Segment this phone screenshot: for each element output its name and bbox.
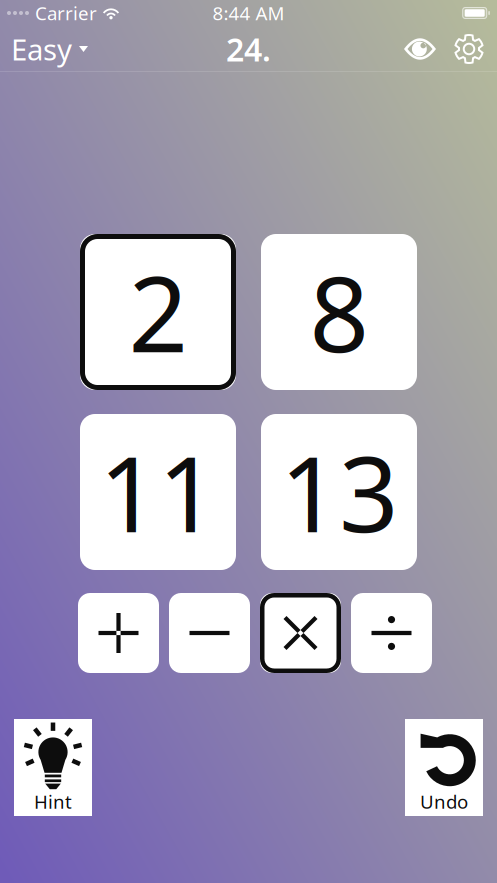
staticText: Undo: [420, 789, 468, 814]
button[interactable]: 11: [80, 414, 236, 570]
staticText: 2: [128, 243, 187, 381]
staticText: 11: [99, 423, 217, 561]
button[interactable]: Divide: [351, 593, 432, 673]
staticText: Easy: [11, 29, 72, 68]
staticText: Carrier: [35, 1, 97, 25]
button[interactable]: Minus: [169, 593, 250, 673]
staticText: 24.: [226, 28, 271, 70]
button[interactable]: Reveal solution: [395, 26, 445, 72]
button[interactable]: Undo: [405, 719, 483, 816]
button[interactable]: 8: [261, 234, 417, 390]
button[interactable]: Settings: [445, 26, 497, 72]
staticText: 13: [280, 423, 398, 561]
button[interactable]: Multiply: [260, 593, 341, 673]
button[interactable]: Plus: [78, 593, 159, 673]
staticText: Hint: [34, 789, 72, 814]
staticText: 8: [309, 243, 368, 381]
button[interactable]: Easy: [0, 26, 99, 72]
button[interactable]: 2: [80, 234, 236, 390]
button[interactable]: 13: [261, 414, 417, 570]
button[interactable]: Hint: [14, 719, 92, 816]
staticText: 8:44 AM: [212, 1, 284, 25]
